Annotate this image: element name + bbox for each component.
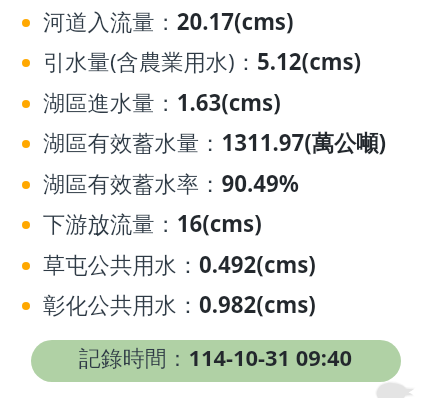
button[interactable]: 彰化公共用水：0.982(cms)	[0, 286, 425, 326]
staticText: 湖區有效蓄水量：1311.97(萬公噸)	[43, 127, 387, 157]
button[interactable]: 湖區進水量：1.63(cms)	[0, 84, 425, 124]
button[interactable]: 河道入流量：20.17(cms)	[0, 3, 425, 43]
staticText: 河道入流量：20.17(cms)	[43, 6, 294, 36]
button[interactable]: 草屯公共用水：0.492(cms)	[0, 246, 425, 286]
staticText: 湖區進水量：1.63(cms)	[43, 87, 281, 117]
button[interactable]: 引水量(含農業用水)：5.12(cms)	[0, 43, 425, 83]
staticText: 引水量(含農業用水)：5.12(cms)	[43, 46, 362, 76]
staticText: 記錄時間：114-10-31 09:40	[79, 343, 353, 373]
button[interactable]: 下游放流量：16(cms)	[0, 205, 425, 245]
staticText: 下游放流量：16(cms)	[43, 208, 262, 238]
staticText: 彰化公共用水：0.982(cms)	[43, 289, 316, 319]
button[interactable]: 湖區有效蓄水量：1311.97(萬公噸)	[0, 124, 425, 164]
button[interactable]: 記錄時間：114-10-31 09:40	[31, 340, 401, 382]
staticText: 湖區有效蓄水率：90.49%	[43, 168, 299, 198]
staticText: 草屯公共用水：0.492(cms)	[43, 249, 316, 279]
button[interactable]: 湖區有效蓄水率：90.49%	[0, 165, 425, 205]
other: Fish decoration	[0, 0, 425, 398]
